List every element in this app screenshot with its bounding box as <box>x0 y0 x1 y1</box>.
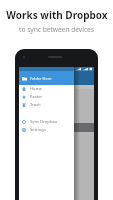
staticText: Sync Dropbox <box>30 119 58 125</box>
staticText: Folder Here <box>30 76 52 81</box>
staticText: Home <box>30 86 42 92</box>
button[interactable]: Trash <box>19 101 74 109</box>
button[interactable]: Settings <box>19 126 74 134</box>
staticText: Settings <box>30 127 46 133</box>
button[interactable]: Easter <box>19 93 74 101</box>
button[interactable]: Home <box>19 85 74 93</box>
staticText: Easter <box>30 94 43 100</box>
staticText: Works with Dropbox <box>6 8 108 22</box>
staticText: to sync between devices <box>19 25 94 34</box>
button[interactable]: Sync Dropbox <box>19 118 74 126</box>
staticText: Trash <box>30 102 41 108</box>
